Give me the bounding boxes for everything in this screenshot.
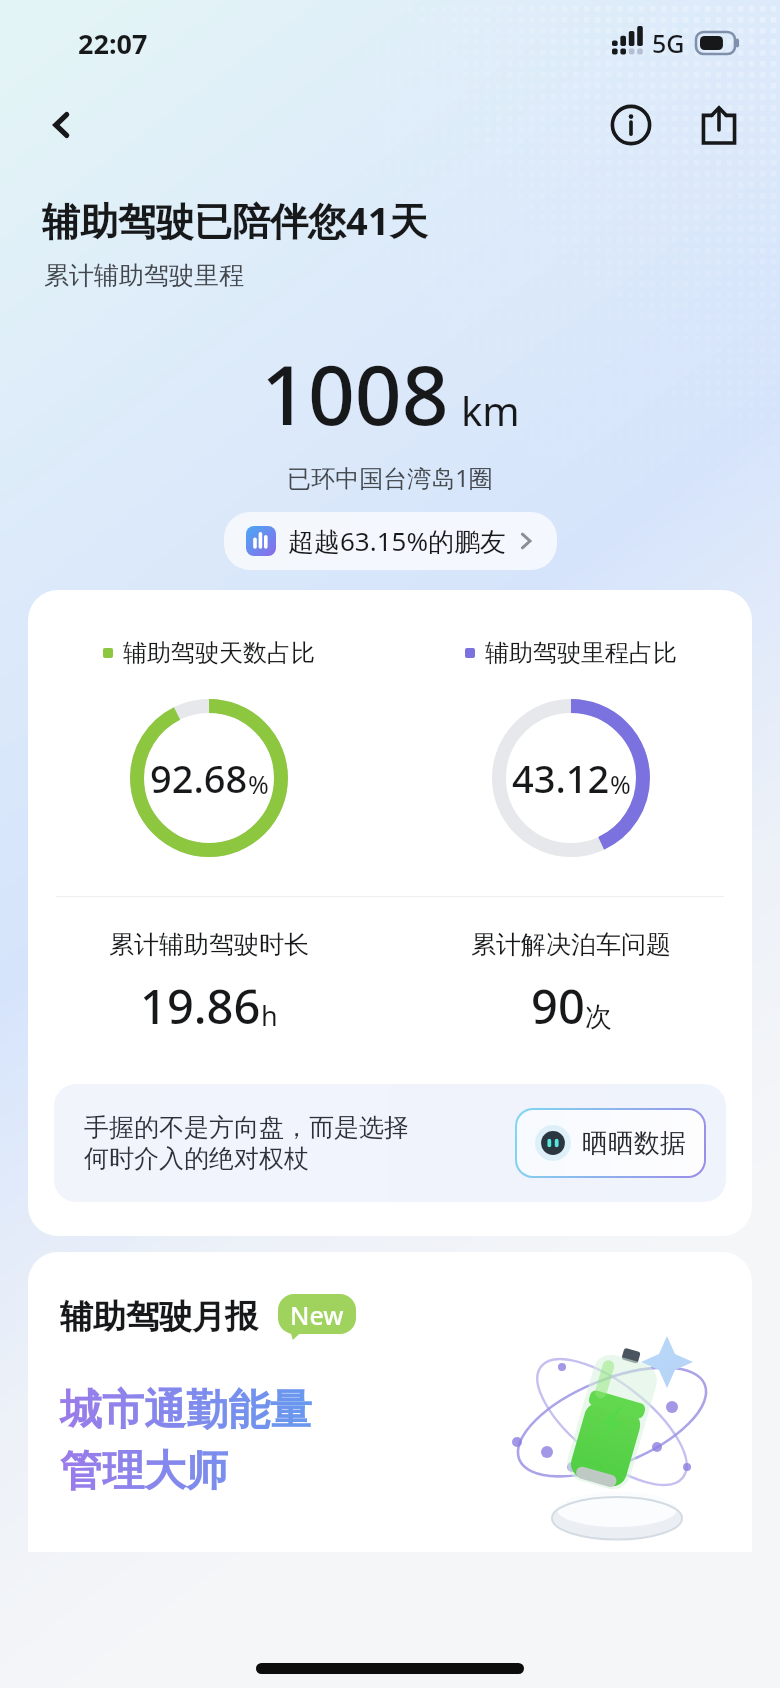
staticText: 晒晒数据 (582, 1127, 686, 1160)
staticText: 43.12 (512, 752, 610, 804)
staticText: 累计解决泊车问题 (471, 929, 671, 960)
button[interactable]: Back (34, 97, 90, 153)
staticText: 5G (652, 26, 685, 60)
staticText: 92.68 (150, 752, 248, 804)
staticText: 次 (585, 1000, 612, 1034)
staticText: 累计辅助驾驶里程 (44, 260, 244, 291)
staticText: 城市通勤能量 (60, 1384, 312, 1437)
staticText: 辅助驾驶天数占比 (123, 638, 315, 668)
staticText: 辅助驾驶已陪伴您41天 (42, 194, 428, 246)
staticText: 1008 (261, 337, 449, 449)
button[interactable]: Share (690, 96, 748, 154)
staticText: 已环中国台湾岛1圈 (0, 461, 780, 494)
staticText: 辅助驾驶里程占比 (485, 638, 677, 668)
staticText: 手握的不是方向盘，而是选择 (84, 1112, 409, 1143)
staticText: 累计辅助驾驶时长 (109, 929, 309, 960)
staticText: 超越63.15%的鹏友 (288, 523, 507, 559)
button[interactable]: 晒晒数据 (517, 1110, 704, 1176)
staticText: 何时介入的绝对权杖 (84, 1143, 309, 1174)
staticText: 90 (531, 974, 585, 1038)
staticText: 22:07 (78, 25, 148, 62)
staticText: h (261, 997, 278, 1034)
staticText: % (248, 767, 269, 801)
staticText: % (610, 767, 631, 801)
button[interactable]: 辅助驾驶月报 (28, 1252, 752, 1552)
staticText: km (461, 383, 520, 437)
button[interactable]: Info (602, 96, 660, 154)
staticText: New (290, 1298, 344, 1332)
button[interactable]: 超越63.15%的鹏友 (224, 512, 557, 570)
staticText: 辅助驾驶月报 (60, 1296, 258, 1338)
staticText: 19.86 (140, 974, 261, 1038)
staticText: 管理大师 (60, 1445, 228, 1498)
